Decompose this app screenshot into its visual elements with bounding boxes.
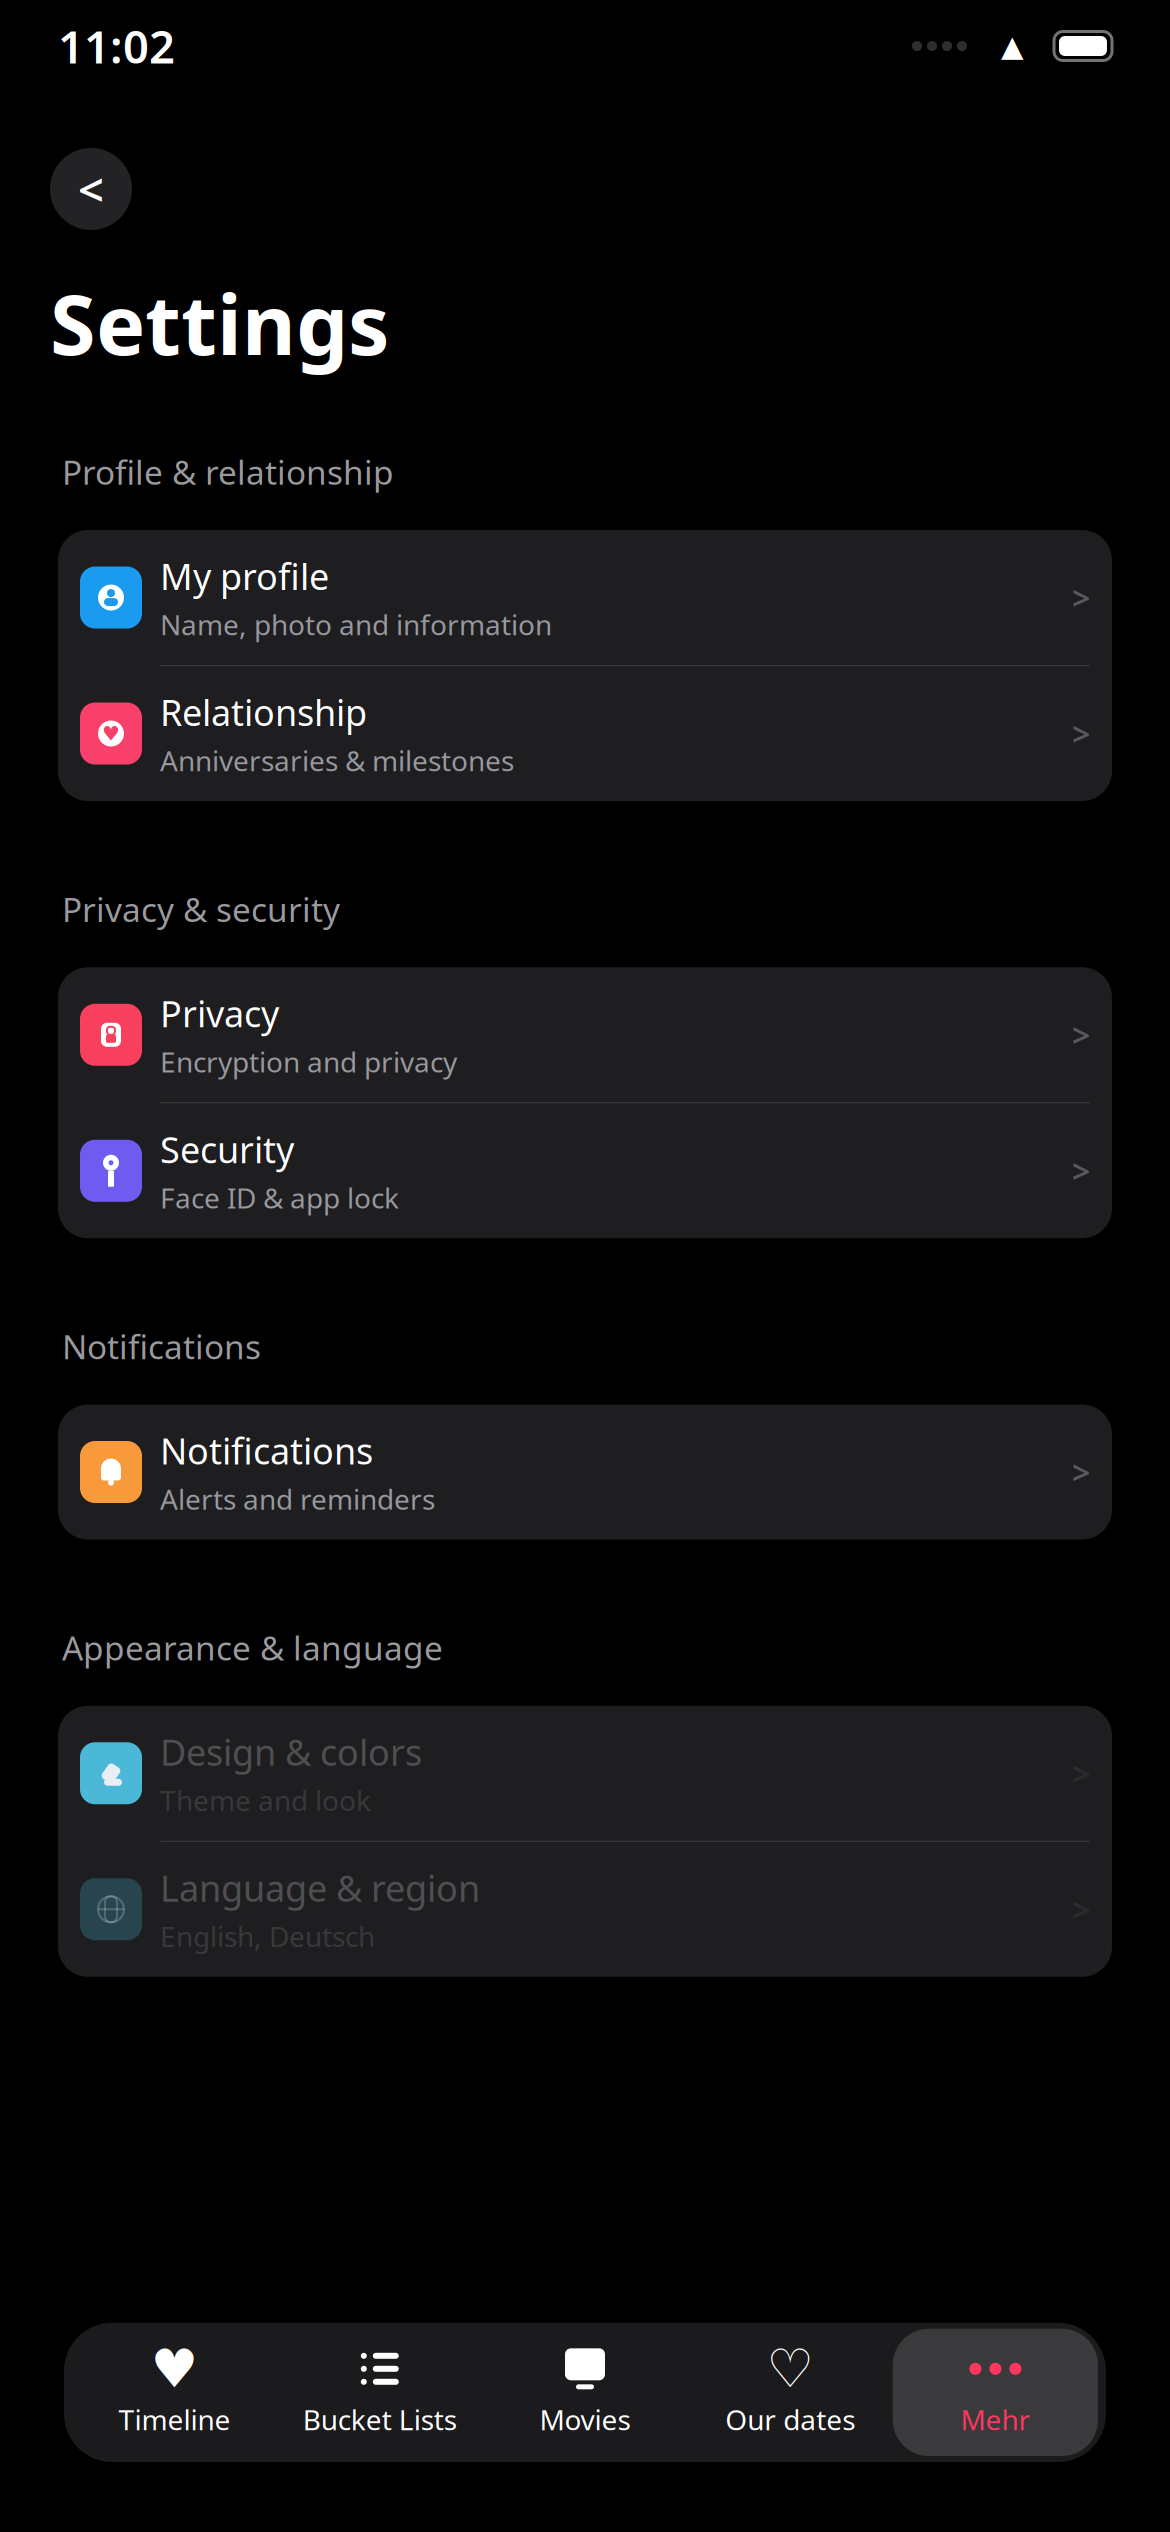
staticText: < xyxy=(78,159,104,219)
staticText: > xyxy=(1072,712,1090,755)
button[interactable]: Movies xyxy=(482,2329,688,2456)
staticText: Name, photo and information xyxy=(160,606,552,643)
button[interactable]: Language & region xyxy=(58,1842,1112,1977)
staticText: ▲ xyxy=(1001,29,1024,63)
staticText: Profile & relationship xyxy=(62,450,394,494)
button[interactable]: Security xyxy=(58,1103,1112,1238)
staticText: Theme and look xyxy=(160,1782,371,1819)
staticText: > xyxy=(1072,1451,1090,1493)
staticText: Language & region xyxy=(160,1864,480,1912)
button[interactable]: ♡ xyxy=(688,2329,893,2456)
staticText: Encryption and privacy xyxy=(160,1043,457,1080)
button[interactable]: Mehr xyxy=(893,2329,1098,2456)
button[interactable]: ♥ xyxy=(58,666,1112,801)
staticText: Timeline xyxy=(119,2401,231,2438)
staticText: Notifications xyxy=(160,1426,373,1474)
staticText: English, Deutsch xyxy=(160,1918,375,1955)
staticText: Mehr xyxy=(960,2401,1030,2438)
staticText: 11:02 xyxy=(58,16,175,76)
staticText: > xyxy=(1072,1888,1090,1930)
staticText: Notifications xyxy=(62,1324,261,1369)
staticText: > xyxy=(1072,1149,1090,1192)
staticText: ♥ xyxy=(102,722,120,745)
staticText: Privacy & security xyxy=(62,887,340,931)
staticText: Appearance & language xyxy=(62,1625,443,1670)
staticText: Our dates xyxy=(725,2401,855,2438)
staticText: Security xyxy=(160,1125,294,1173)
staticText: > xyxy=(1072,1752,1090,1794)
button[interactable]: My profile xyxy=(58,530,1112,665)
button[interactable]: Notifications xyxy=(58,1404,1112,1539)
staticText: Design & colors xyxy=(160,1728,422,1776)
staticText: Settings xyxy=(50,268,389,378)
staticText: Privacy xyxy=(160,989,279,1037)
staticText: Anniversaries & milestones xyxy=(160,742,514,779)
button[interactable]: ♥ xyxy=(72,2329,277,2456)
staticText: ♡ xyxy=(766,2339,814,2399)
button[interactable]: Privacy xyxy=(58,967,1112,1102)
staticText: Alerts and reminders xyxy=(160,1480,435,1517)
button[interactable]: Design & colors xyxy=(58,1706,1112,1841)
button[interactable]: Back xyxy=(50,148,132,230)
staticText: Bucket Lists xyxy=(303,2401,457,2438)
button[interactable]: Bucket Lists xyxy=(277,2329,482,2456)
staticText: My profile xyxy=(160,552,329,600)
staticText: Face ID & app lock xyxy=(160,1179,399,1216)
staticText: > xyxy=(1072,1013,1090,1056)
staticText: Relationship xyxy=(160,688,367,736)
staticText: ♥ xyxy=(151,2339,199,2399)
staticText: > xyxy=(1072,576,1090,619)
staticText: Movies xyxy=(539,2401,630,2438)
